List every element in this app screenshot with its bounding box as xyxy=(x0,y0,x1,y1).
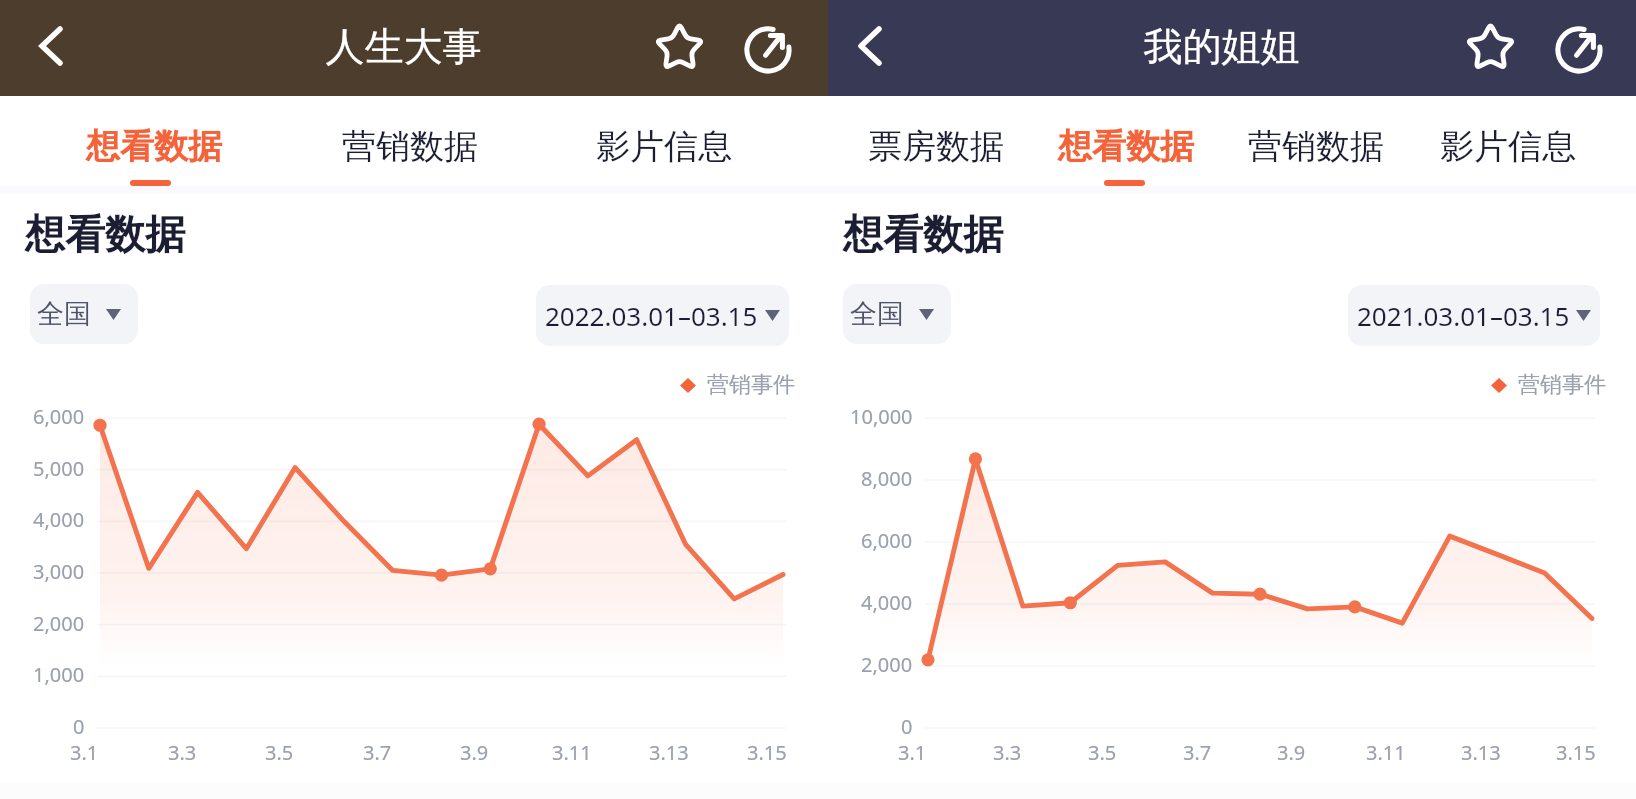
button[interactable]: Favorite xyxy=(651,19,707,75)
staticText: 0 xyxy=(73,713,85,740)
staticText: 3,000 xyxy=(33,558,85,585)
staticText: 3.3 xyxy=(993,739,1022,766)
staticText: 3.1 xyxy=(898,739,927,766)
staticText: 3.13 xyxy=(649,739,689,766)
button[interactable]: 影片信息 xyxy=(1428,112,1588,180)
button[interactable]: 2022.03.01–03.15 xyxy=(536,285,789,346)
button[interactable]: Share xyxy=(1551,21,1607,77)
staticText: 我的姐姐 xyxy=(828,22,1615,71)
staticText: 营销事件 xyxy=(707,371,795,399)
staticText: 想看数据 xyxy=(843,209,1003,259)
staticText: 3.11 xyxy=(1366,739,1406,766)
staticText: 影片信息 xyxy=(596,125,732,168)
button[interactable]: Back xyxy=(842,18,898,74)
staticText: 2021.03.01–03.15 xyxy=(1357,298,1570,333)
staticText: 全国 xyxy=(37,297,91,331)
staticText: 全国 xyxy=(850,297,904,331)
staticText: 3.15 xyxy=(747,739,787,766)
staticText: 想看数据 xyxy=(1058,125,1194,168)
staticText: 人生大事 xyxy=(0,22,807,71)
staticText: 0 xyxy=(901,713,913,740)
staticText: 8,000 xyxy=(861,465,913,492)
staticText: 想看数据 xyxy=(25,209,185,259)
staticText: 营销数据 xyxy=(342,125,478,168)
staticText: 4,000 xyxy=(861,589,913,616)
staticText: 3.11 xyxy=(552,739,592,766)
staticText: 3.7 xyxy=(363,739,392,766)
staticText: 1,000 xyxy=(33,661,85,688)
button[interactable]: Favorite xyxy=(1462,19,1518,75)
staticText: 2,000 xyxy=(861,651,913,678)
button[interactable]: 全国 xyxy=(843,284,951,344)
staticText: 营销事件 xyxy=(1518,371,1606,399)
staticText: 3.15 xyxy=(1556,739,1596,766)
staticText: 营销数据 xyxy=(1248,125,1384,168)
staticText: 2,000 xyxy=(33,610,85,637)
staticText: 影片信息 xyxy=(1440,125,1576,168)
staticText: 10,000 xyxy=(850,403,913,430)
button[interactable]: 票房数据 xyxy=(856,112,1016,180)
staticText: 3.1 xyxy=(70,739,99,766)
staticText: 想看数据 xyxy=(86,125,222,168)
staticText: 3.9 xyxy=(460,739,489,766)
staticText: 票房数据 xyxy=(868,125,1004,168)
staticText: 3.5 xyxy=(1088,739,1117,766)
staticText: 4,000 xyxy=(33,506,85,533)
staticText: 6,000 xyxy=(33,403,85,430)
button[interactable]: 营销数据 xyxy=(1236,112,1396,180)
staticText: 6,000 xyxy=(861,527,913,554)
staticText: 3.5 xyxy=(265,739,294,766)
button[interactable]: 2021.03.01–03.15 xyxy=(1348,285,1600,346)
staticText: 2022.03.01–03.15 xyxy=(545,298,758,333)
staticText: 3.9 xyxy=(1277,739,1306,766)
button[interactable]: 营销数据 xyxy=(330,112,490,180)
button[interactable]: 想看数据 xyxy=(1046,112,1206,180)
staticText: 3.13 xyxy=(1461,739,1501,766)
staticText: 3.3 xyxy=(168,739,197,766)
button[interactable]: 影片信息 xyxy=(584,112,744,180)
button[interactable]: 全国 xyxy=(30,284,138,344)
button[interactable]: 想看数据 xyxy=(74,112,234,180)
button[interactable]: Share xyxy=(740,21,796,77)
staticText: 5,000 xyxy=(33,455,85,482)
button[interactable]: Back xyxy=(23,18,79,74)
staticText: 3.7 xyxy=(1183,739,1212,766)
